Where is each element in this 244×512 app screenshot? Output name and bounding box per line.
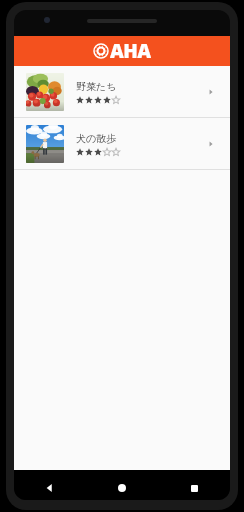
other: Open details — [204, 85, 218, 99]
button[interactable]: Home — [112, 478, 132, 498]
staticText: 野菜たち — [76, 80, 117, 93]
button[interactable]: 野菜たち — [14, 66, 230, 117]
button[interactable]: 犬の散歩 — [14, 118, 230, 169]
staticText: AHA — [110, 38, 151, 64]
staticText: 犬の散歩 — [76, 132, 117, 145]
button[interactable]: Back — [40, 478, 60, 498]
other: Open details — [204, 137, 218, 151]
button[interactable]: Recent apps — [184, 478, 204, 498]
